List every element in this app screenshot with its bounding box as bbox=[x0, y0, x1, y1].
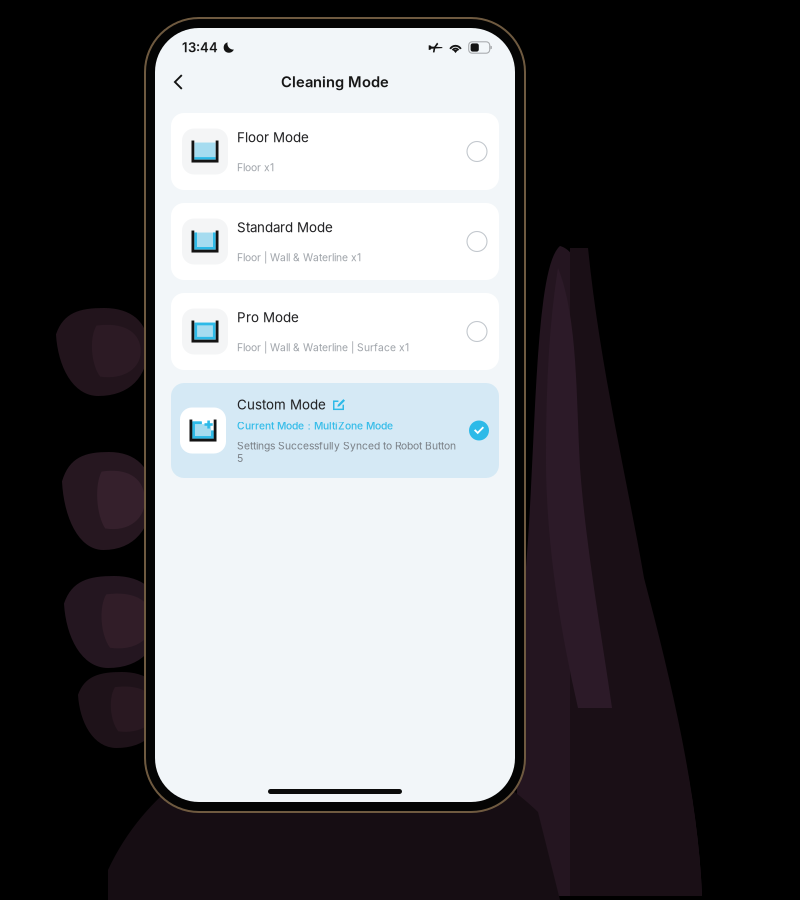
staticText: Custom Mode bbox=[237, 396, 326, 413]
staticText: Cleaning Mode bbox=[281, 73, 389, 91]
button[interactable]: Custom Mode bbox=[171, 383, 499, 478]
staticText: Pro Mode bbox=[237, 309, 299, 325]
button[interactable]: Floor Mode bbox=[171, 113, 499, 190]
button[interactable]: Pro Mode bbox=[171, 293, 499, 370]
staticText: Standard Mode bbox=[237, 219, 333, 235]
staticText: Floor x1 bbox=[237, 161, 274, 174]
staticText: Current Mode：MultiZone Mode bbox=[237, 420, 393, 433]
staticText: Floor | Wall & Waterline | Surface x1 bbox=[237, 341, 409, 354]
staticText: Floor | Wall & Waterline x1 bbox=[237, 251, 361, 264]
button[interactable]: Standard Mode bbox=[171, 203, 499, 280]
staticText: Floor Mode bbox=[237, 129, 309, 145]
staticText: Settings Successfully Synced to Robot Bu… bbox=[237, 440, 456, 464]
button[interactable]: Back bbox=[160, 64, 196, 100]
staticText: 13:44 bbox=[182, 40, 218, 55]
